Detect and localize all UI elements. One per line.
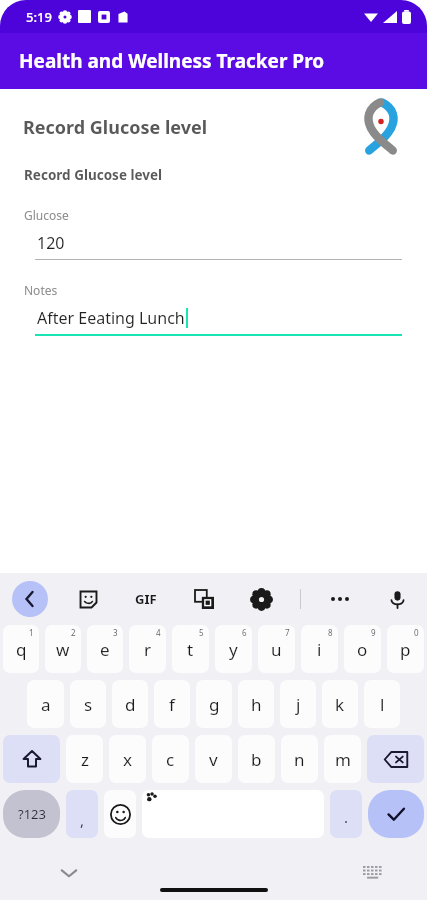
- staticText: 120: [37, 232, 65, 254]
- staticText: ,: [80, 810, 85, 830]
- staticText: s: [84, 693, 93, 716]
- staticText: f: [169, 693, 175, 716]
- staticText: t: [187, 638, 194, 661]
- staticText: After Eeating Lunch: [37, 307, 185, 329]
- button[interactable]: l: [364, 680, 400, 728]
- button[interactable]: s: [70, 680, 106, 728]
- staticText: a: [41, 693, 51, 716]
- button[interactable]: u: [258, 625, 295, 673]
- button[interactable]: Enter: [368, 790, 424, 838]
- staticText: r: [144, 638, 152, 661]
- staticText: 6: [242, 627, 247, 638]
- button[interactable]: m: [324, 735, 361, 783]
- staticText: e: [100, 638, 110, 661]
- staticText: n: [294, 748, 305, 771]
- staticText: z: [81, 748, 89, 771]
- staticText: g: [209, 693, 220, 716]
- button[interactable]: GIF: [128, 581, 164, 617]
- staticText: GIF: [135, 590, 157, 608]
- staticText: l: [380, 693, 385, 716]
- button[interactable]: Translate: [186, 581, 222, 617]
- staticText: o: [357, 638, 368, 661]
- staticText: v: [209, 748, 218, 771]
- staticText: h: [251, 693, 262, 716]
- staticText: 4: [156, 627, 161, 638]
- button[interactable]: o: [344, 625, 381, 673]
- staticText: y: [229, 638, 238, 661]
- button[interactable]: Voice input: [379, 581, 415, 617]
- button[interactable]: q: [3, 625, 39, 673]
- staticText: w: [56, 638, 70, 661]
- staticText: .: [344, 807, 349, 827]
- staticText: Health and Wellness Tracker Pro: [19, 48, 325, 74]
- button[interactable]: Shift: [3, 735, 60, 783]
- staticText: d: [125, 693, 136, 716]
- button[interactable]: p: [387, 625, 424, 673]
- button[interactable]: g: [196, 680, 232, 728]
- staticText: b: [251, 748, 262, 771]
- staticText: j: [296, 693, 301, 716]
- staticText: m: [335, 748, 351, 771]
- staticText: 5:19: [26, 8, 52, 26]
- button[interactable]: r: [129, 625, 166, 673]
- button[interactable]: t: [172, 625, 209, 673]
- button[interactable]: w: [45, 625, 81, 673]
- button[interactable]: v: [195, 735, 232, 783]
- button[interactable]: c: [152, 735, 189, 783]
- staticText: 0: [414, 627, 419, 638]
- button[interactable]: d: [112, 680, 148, 728]
- button[interactable]: h: [238, 680, 274, 728]
- staticText: 9: [371, 627, 376, 638]
- staticText: Glucose: [24, 207, 69, 223]
- button[interactable]: Emoji: [104, 790, 136, 838]
- button[interactable]: j: [280, 680, 316, 728]
- button[interactable]: ,: [66, 790, 98, 838]
- button[interactable]: y: [215, 625, 252, 673]
- button[interactable]: z: [66, 735, 103, 783]
- staticText: 7: [285, 627, 290, 638]
- staticText: k: [335, 693, 345, 716]
- staticText: 3: [113, 627, 118, 638]
- button[interactable]: ?123: [3, 790, 60, 838]
- staticText: 1: [29, 627, 34, 638]
- button[interactable]: f: [154, 680, 190, 728]
- staticText: ?123: [18, 805, 46, 823]
- button[interactable]: i: [301, 625, 338, 673]
- staticText: p: [400, 638, 411, 661]
- button[interactable]: e: [87, 625, 123, 673]
- button[interactable]: b: [238, 735, 275, 783]
- staticText: Record Glucose level: [24, 166, 163, 184]
- button[interactable]: x: [109, 735, 146, 783]
- button[interactable]: Hide keyboard: [60, 864, 78, 882]
- button[interactable]: k: [322, 680, 358, 728]
- button[interactable]: a: [27, 680, 64, 728]
- button[interactable]: Back: [12, 581, 48, 617]
- staticText: Notes: [24, 282, 58, 298]
- button[interactable]: .: [330, 790, 362, 838]
- button[interactable]: Stickers: [70, 581, 106, 617]
- button[interactable]: Switch keyboard: [363, 866, 383, 880]
- staticText: 8: [328, 627, 333, 638]
- button[interactable]: Backspace: [367, 735, 424, 783]
- staticText: 5: [199, 627, 204, 638]
- staticText: x: [123, 748, 132, 771]
- staticText: Record Glucose level: [23, 115, 208, 140]
- staticText: 2: [71, 627, 76, 638]
- staticText: i: [317, 638, 322, 661]
- staticText: u: [271, 638, 282, 661]
- button[interactable]: n: [281, 735, 318, 783]
- button[interactable]: More options: [322, 581, 358, 617]
- staticText: c: [166, 748, 175, 771]
- staticText: q: [16, 638, 27, 661]
- button[interactable]: Settings: [243, 581, 279, 617]
- button[interactable]: Space: [142, 790, 324, 838]
